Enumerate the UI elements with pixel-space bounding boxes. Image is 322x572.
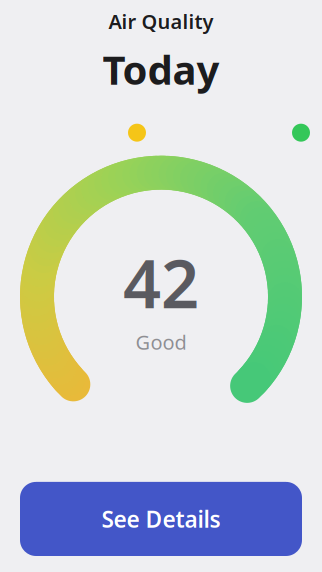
button[interactable]: See Details	[20, 482, 302, 556]
staticText: See Details	[101, 504, 220, 534]
staticText: Good	[135, 329, 186, 355]
staticText: 42	[123, 238, 199, 327]
staticText: Today	[102, 43, 219, 96]
staticText: Air Quality	[108, 8, 213, 35]
